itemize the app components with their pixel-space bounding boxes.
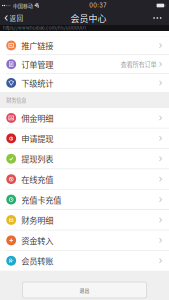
- button[interactable]: 充值卡充值: [0, 190, 169, 209]
- staticText: 财务明细: [21, 214, 53, 226]
- staticText: 财务信息: [6, 96, 26, 104]
- staticText: 中国移动: [13, 2, 33, 9]
- staticText: https://www.huibao.com/h5/u000001: [3, 25, 86, 31]
- staticText: 会员中心: [70, 11, 106, 24]
- staticText: 提现列表: [21, 153, 53, 165]
- staticText: 充值卡充值: [21, 194, 61, 206]
- button[interactable]: 申请提现: [0, 128, 169, 148]
- button[interactable]: 提现列表: [0, 149, 169, 169]
- button[interactable]: 返回: [0, 10, 24, 26]
- button[interactable]: 资金转入: [0, 230, 169, 250]
- button[interactable]: 财务明细: [0, 210, 169, 230]
- button[interactable]: 推广链接: [0, 36, 169, 55]
- staticText: 00:37: [89, 2, 106, 9]
- staticText: 佣金明细: [21, 112, 53, 124]
- staticText: 返回: [10, 13, 24, 23]
- staticText: 推广链接: [21, 39, 53, 51]
- button[interactable]: 订单管理: [0, 55, 169, 73]
- button[interactable]: 退出: [22, 282, 146, 298]
- button[interactable]: More options: [153, 12, 169, 24]
- button[interactable]: 在线充值: [0, 169, 169, 189]
- button[interactable]: 佣金明细: [0, 108, 169, 128]
- staticText: 订单管理: [21, 58, 53, 70]
- button[interactable]: 会员转账: [0, 251, 169, 271]
- staticText: 申请提现: [21, 132, 53, 144]
- staticText: 查看所有订单: [120, 60, 156, 69]
- staticText: 下级统计: [21, 77, 53, 89]
- button[interactable]: 下级统计: [0, 74, 169, 92]
- staticText: 会员转账: [21, 255, 53, 267]
- staticText: 在线充值: [21, 173, 53, 185]
- staticText: 退出: [79, 286, 89, 293]
- staticText: 资金转入: [21, 234, 53, 246]
